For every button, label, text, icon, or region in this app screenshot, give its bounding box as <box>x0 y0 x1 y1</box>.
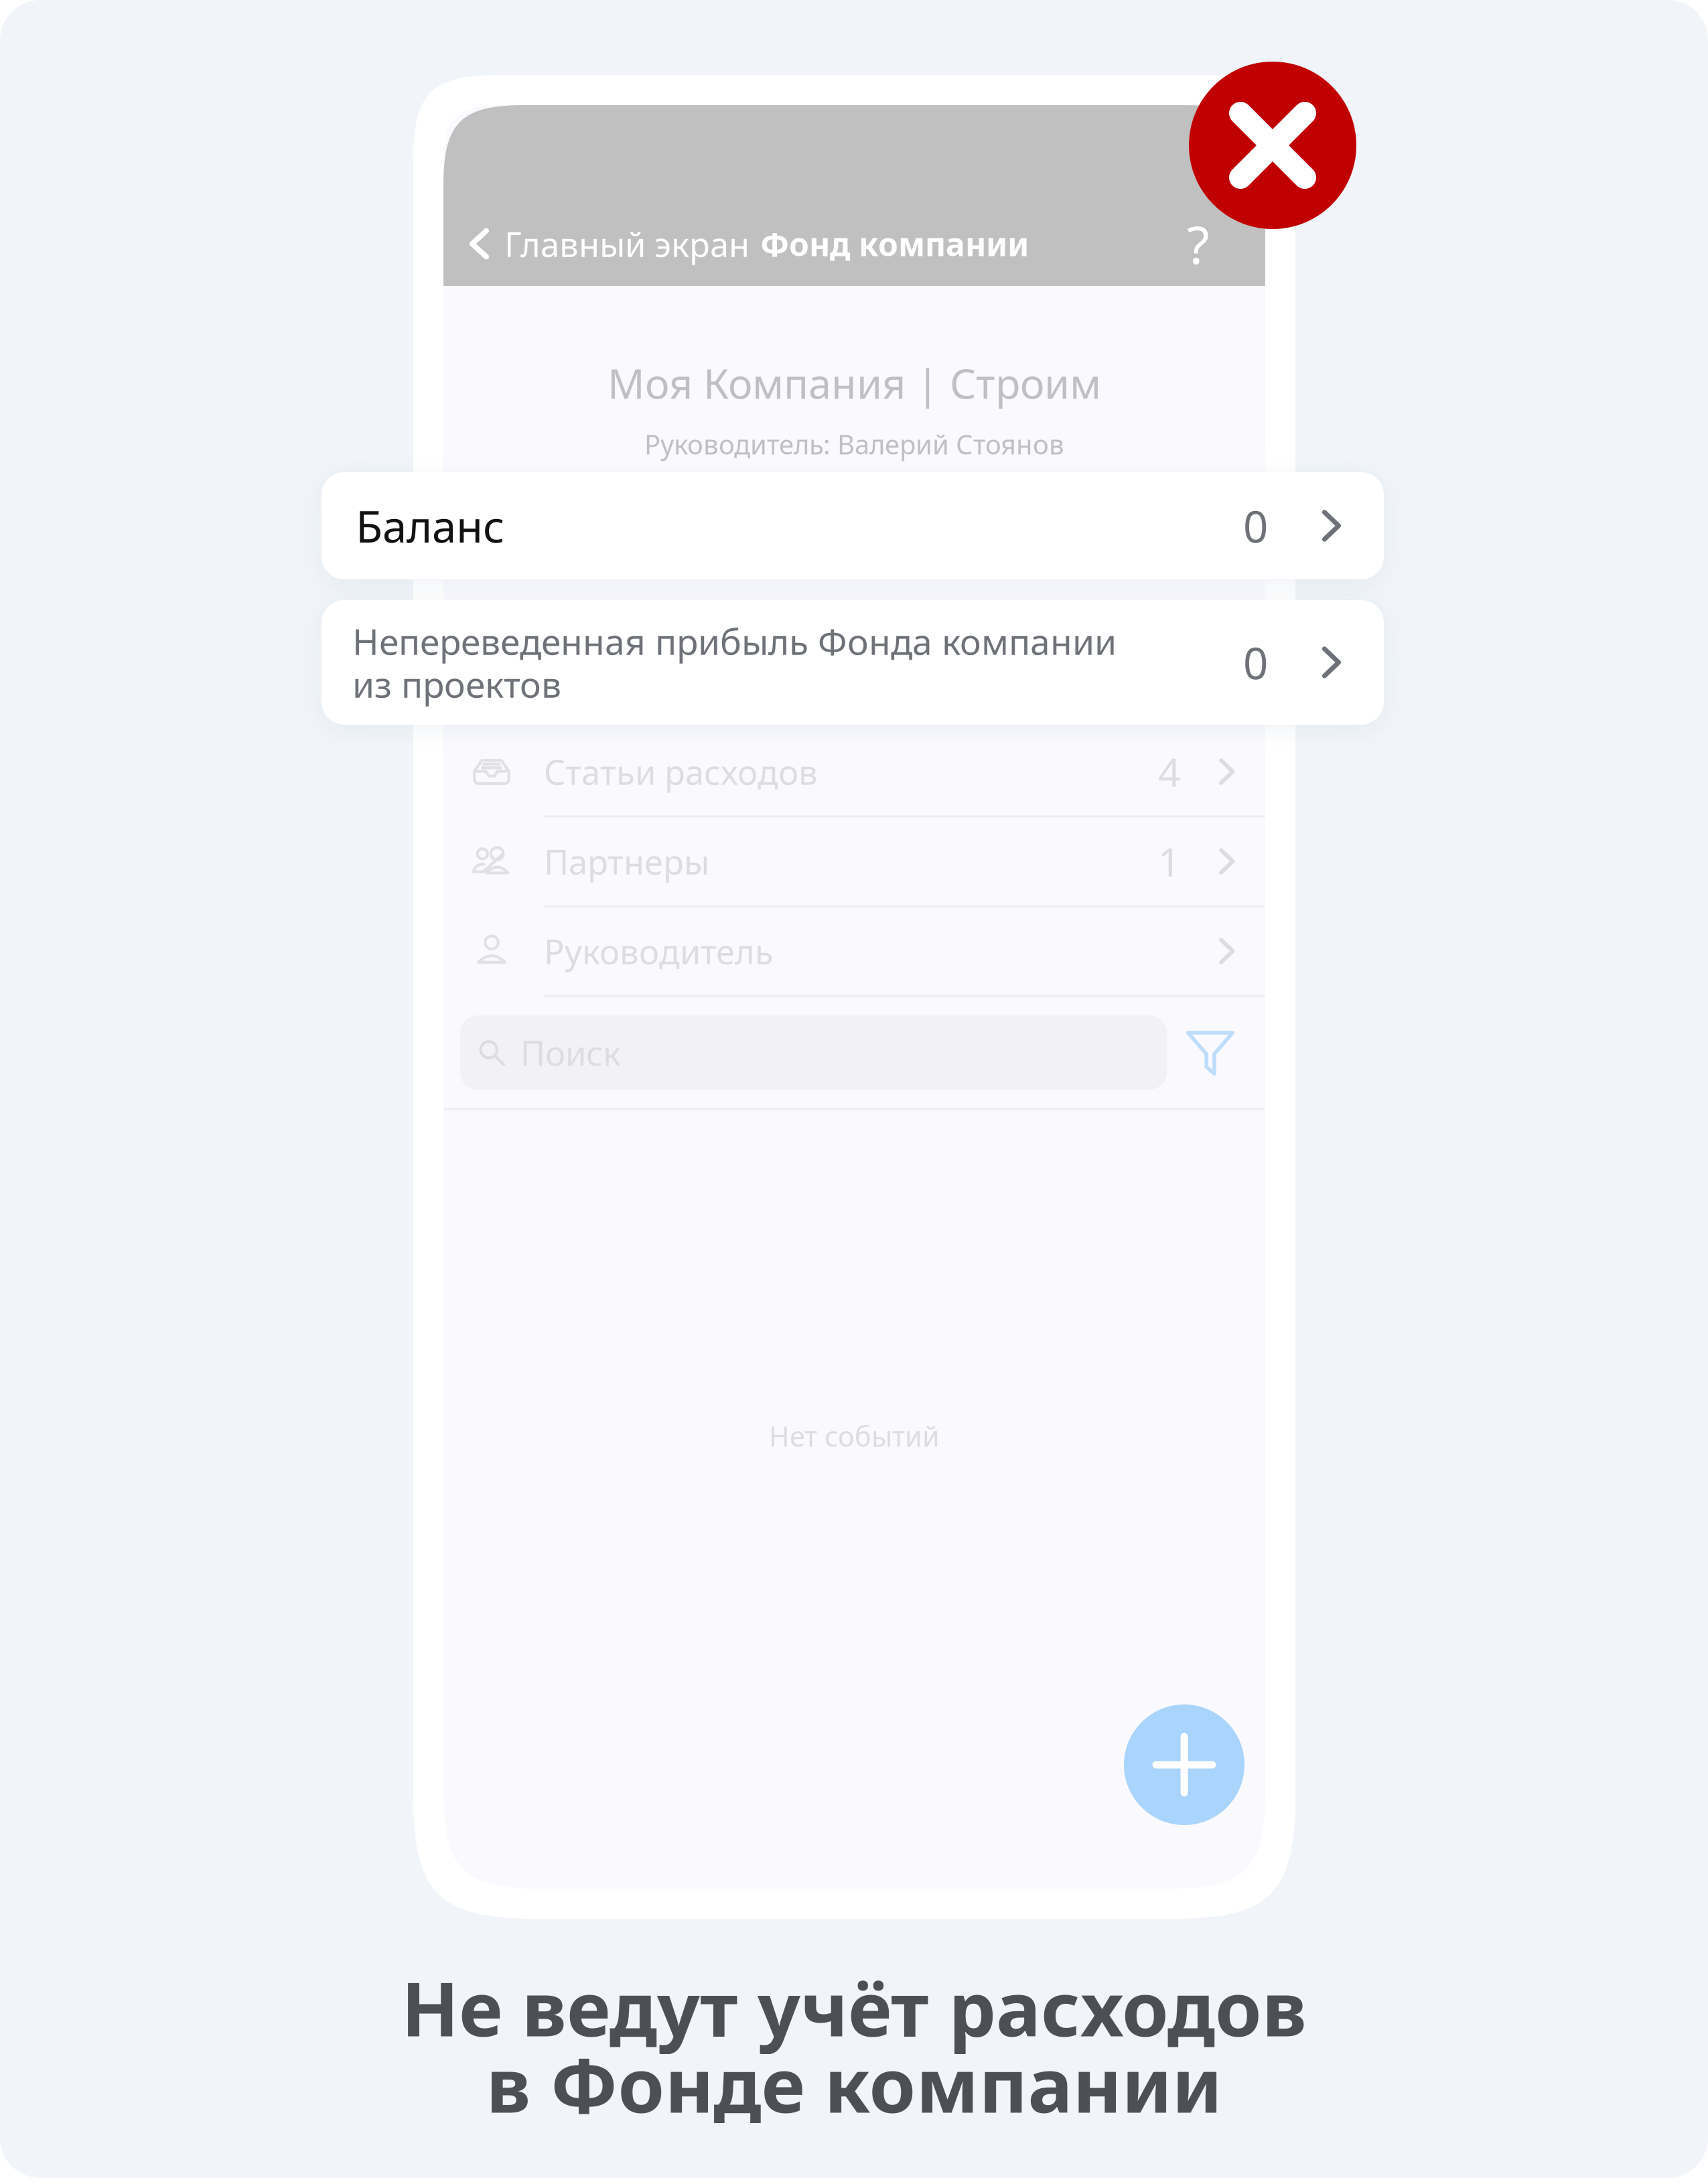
button[interactable]: Непереведенная прибыль Фонда компании <box>322 600 1384 725</box>
staticText: 4 <box>1158 745 1181 798</box>
staticText: 0 <box>1243 633 1268 691</box>
button[interactable]: Партнеры <box>443 817 1265 905</box>
staticText: Главный экран <box>504 221 750 266</box>
button[interactable]: Filter <box>1184 1026 1236 1079</box>
staticText: Поиск <box>520 1030 621 1075</box>
staticText: Партнеры <box>544 839 709 884</box>
staticText: ? <box>1187 209 1210 278</box>
button[interactable]: Баланс <box>322 472 1384 579</box>
button[interactable]: Help <box>1182 220 1215 267</box>
staticText: в Фонде компании <box>486 2034 1222 2133</box>
staticText: Фонд компании <box>760 222 1029 265</box>
button[interactable]: Статьи расходов <box>443 728 1265 815</box>
button[interactable]: Руководитель <box>443 907 1265 995</box>
staticText: Статьи расходов <box>544 749 818 794</box>
staticText: Моя Компания | Строим <box>608 356 1101 410</box>
staticText: Непереведенная прибыль Фонда компании <box>352 617 1117 665</box>
staticText: 0 <box>1243 497 1268 555</box>
staticText: Руководитель <box>544 929 774 974</box>
staticText: Баланс <box>356 497 504 555</box>
staticText: Руководитель: Валерий Стоянов <box>644 426 1064 462</box>
staticText: Не ведут учёт расходов <box>401 1957 1307 2057</box>
button[interactable]: Back <box>460 220 498 267</box>
staticText: 1 <box>1158 835 1181 887</box>
staticText: Нет событий <box>769 1418 940 1454</box>
staticText: из проектов <box>352 660 561 708</box>
